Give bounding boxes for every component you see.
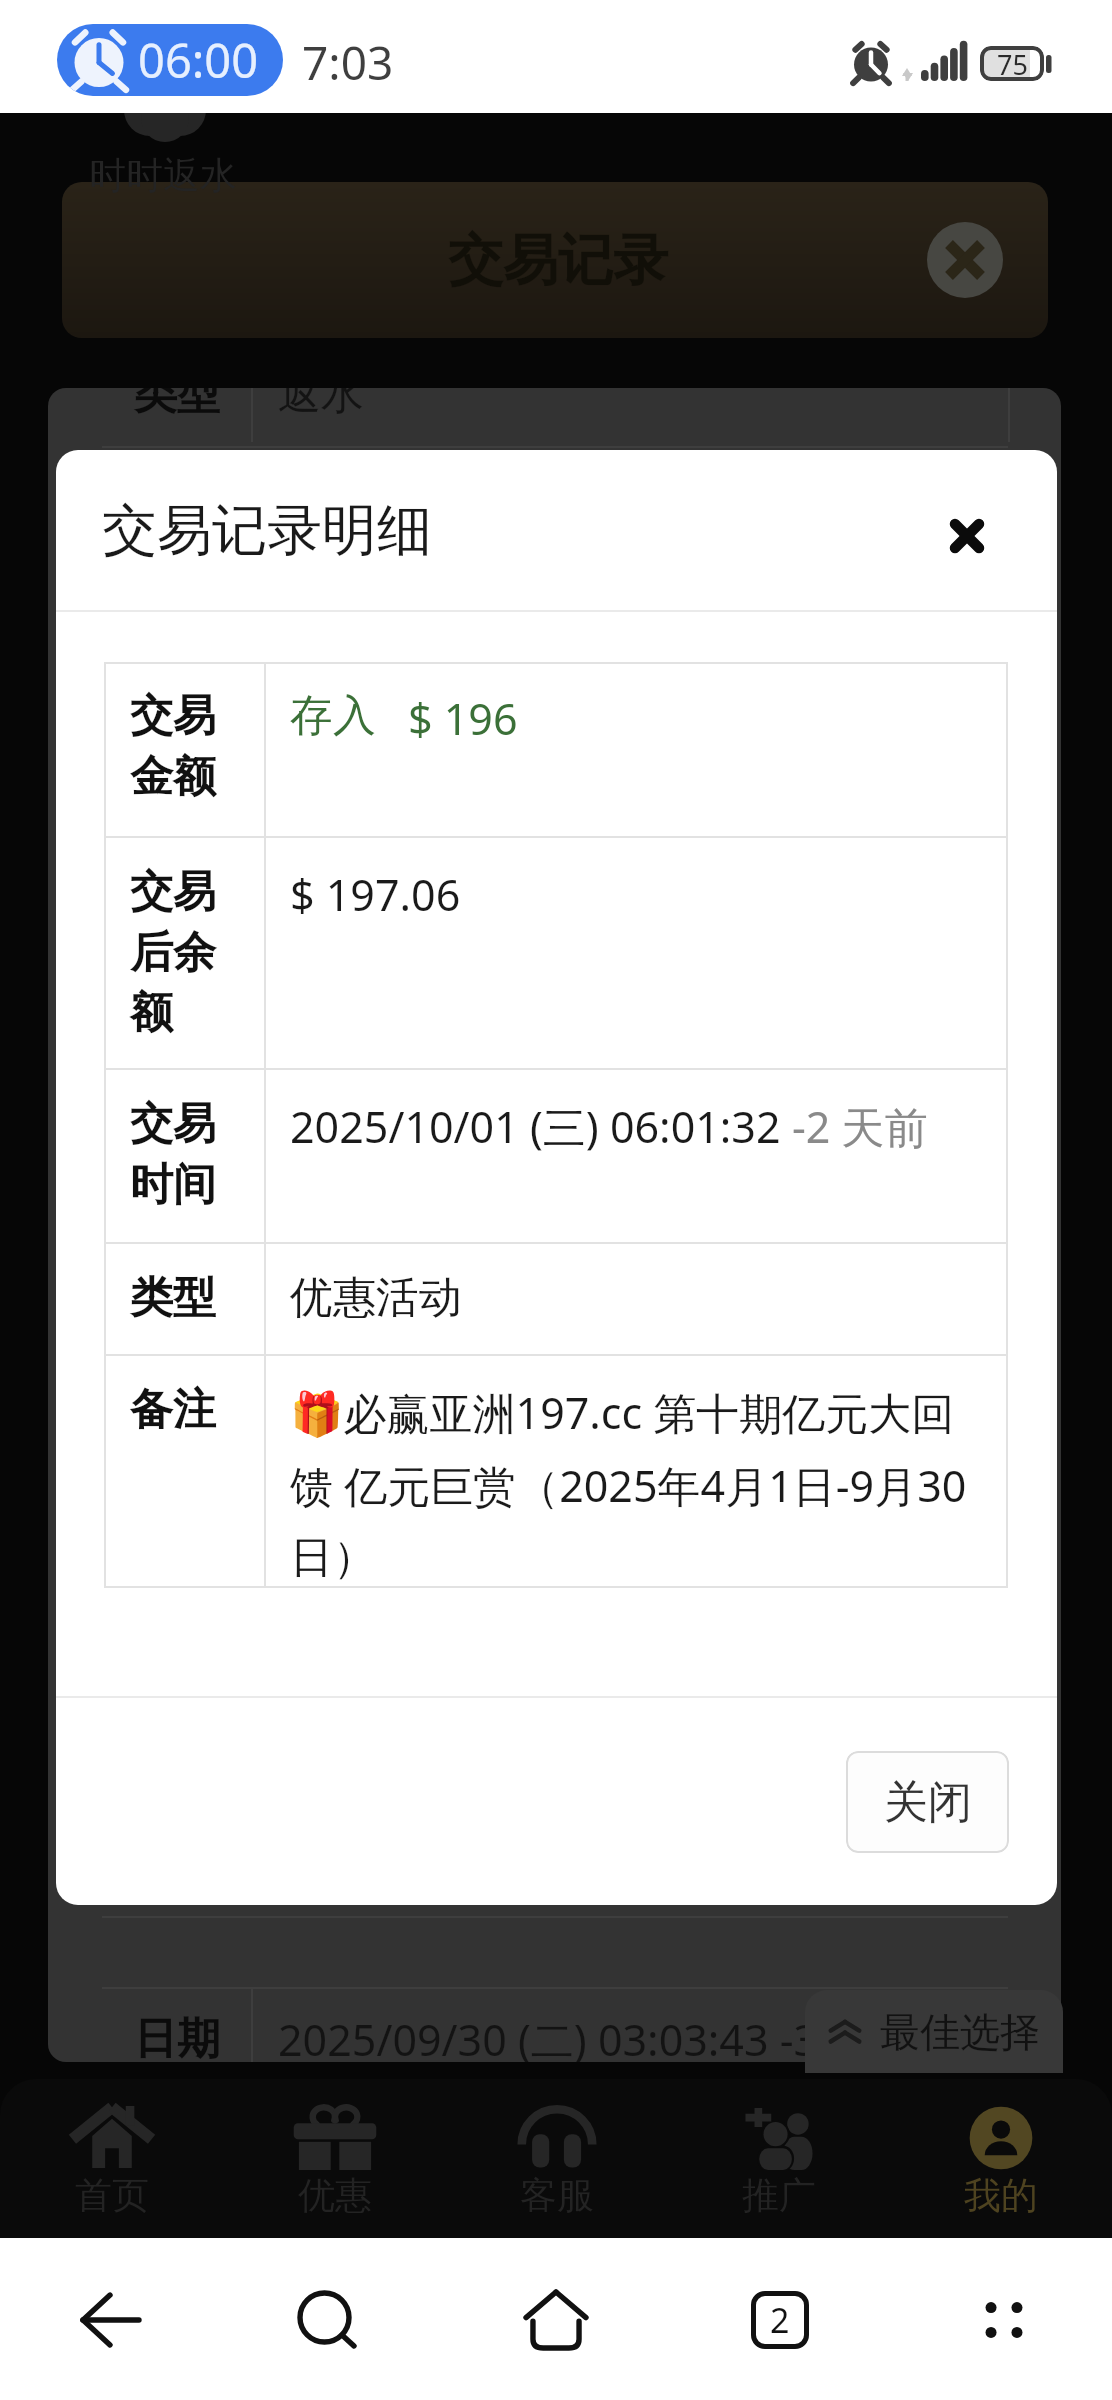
staticText: 存入 [290,689,376,743]
button[interactable]: Back [55,2265,165,2375]
staticText: 2025/10/01 (三) 06:01:32 [290,1097,792,1156]
staticText: 2025/09/30 (二) 03:03:43 -3 [278,2010,819,2062]
staticText: 交易 时间 [130,1097,216,1212]
staticText: 交易 后余 额 [130,865,216,1040]
staticText: 交易 金额 [130,689,216,804]
staticText: -2 天前 [792,1097,928,1156]
staticText: 关闭 [884,1775,972,1830]
staticText: 交易记录明细 [102,496,432,565]
button[interactable]: Close [927,222,1003,298]
staticText: $ 197.06 [290,865,461,924]
button[interactable]: 首页 [0,2079,223,2238]
staticText: 时时返水 [89,152,237,199]
staticText: 类型 [134,388,220,421]
staticText: $ 196 [408,689,518,748]
staticText: 备注 [130,1383,216,1437]
button[interactable]: Close [932,501,1002,571]
button[interactable]: Recent tabs [725,2265,835,2375]
staticText: 最佳选择 [880,2007,1040,2057]
button[interactable]: 优惠 [223,2079,446,2238]
staticText: 日期 [134,2012,220,2062]
button[interactable]: 关闭 [846,1751,1009,1853]
button[interactable]: More options [949,2265,1059,2375]
staticText: 优惠 [298,2172,372,2219]
staticText: 推广 [742,2172,816,2219]
button[interactable]: 推广 [668,2079,890,2238]
button[interactable]: 客服 [446,2079,668,2238]
staticText: 优惠活动 [290,1271,462,1325]
staticText: 75 [997,46,1028,81]
staticText: 06:00 [138,28,259,92]
staticText: 7:03 [302,31,394,94]
staticText: 返水 [278,388,364,421]
staticText: 交易记录 [448,226,668,295]
staticText: 🎁必赢亚洲197.cc 第十期亿元大回馈 亿元巨赏（2025年4月1日-9月30… [290,1383,996,1585]
staticText: 类型 [130,1271,216,1325]
staticText: 首页 [75,2172,149,2219]
button[interactable]: Home [501,2265,611,2375]
staticText: 我的 [964,2172,1038,2219]
staticText: 客服 [520,2172,594,2219]
staticText: 2 [770,2297,790,2343]
button[interactable]: Search [274,2265,384,2375]
button[interactable]: 我的 [890,2079,1112,2238]
